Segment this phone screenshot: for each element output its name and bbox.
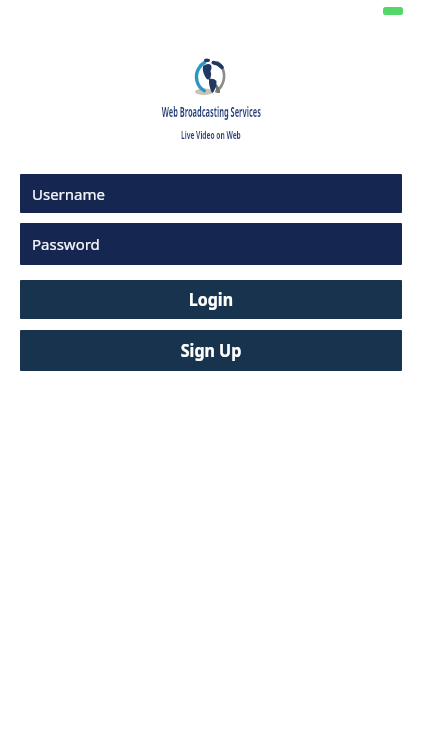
staticText: Password: [32, 234, 100, 254]
button[interactable]: Password: [20, 223, 402, 265]
staticText: Live Video on Web: [181, 127, 241, 142]
staticText: Sign Up: [181, 338, 242, 363]
staticText: Username: [32, 184, 105, 204]
button[interactable]: Sign Up: [20, 330, 402, 371]
staticText: Web Broadcasting Services: [162, 103, 261, 121]
staticText: Login: [189, 287, 233, 312]
button[interactable]: Username: [20, 174, 402, 213]
button[interactable]: Login: [20, 280, 402, 319]
